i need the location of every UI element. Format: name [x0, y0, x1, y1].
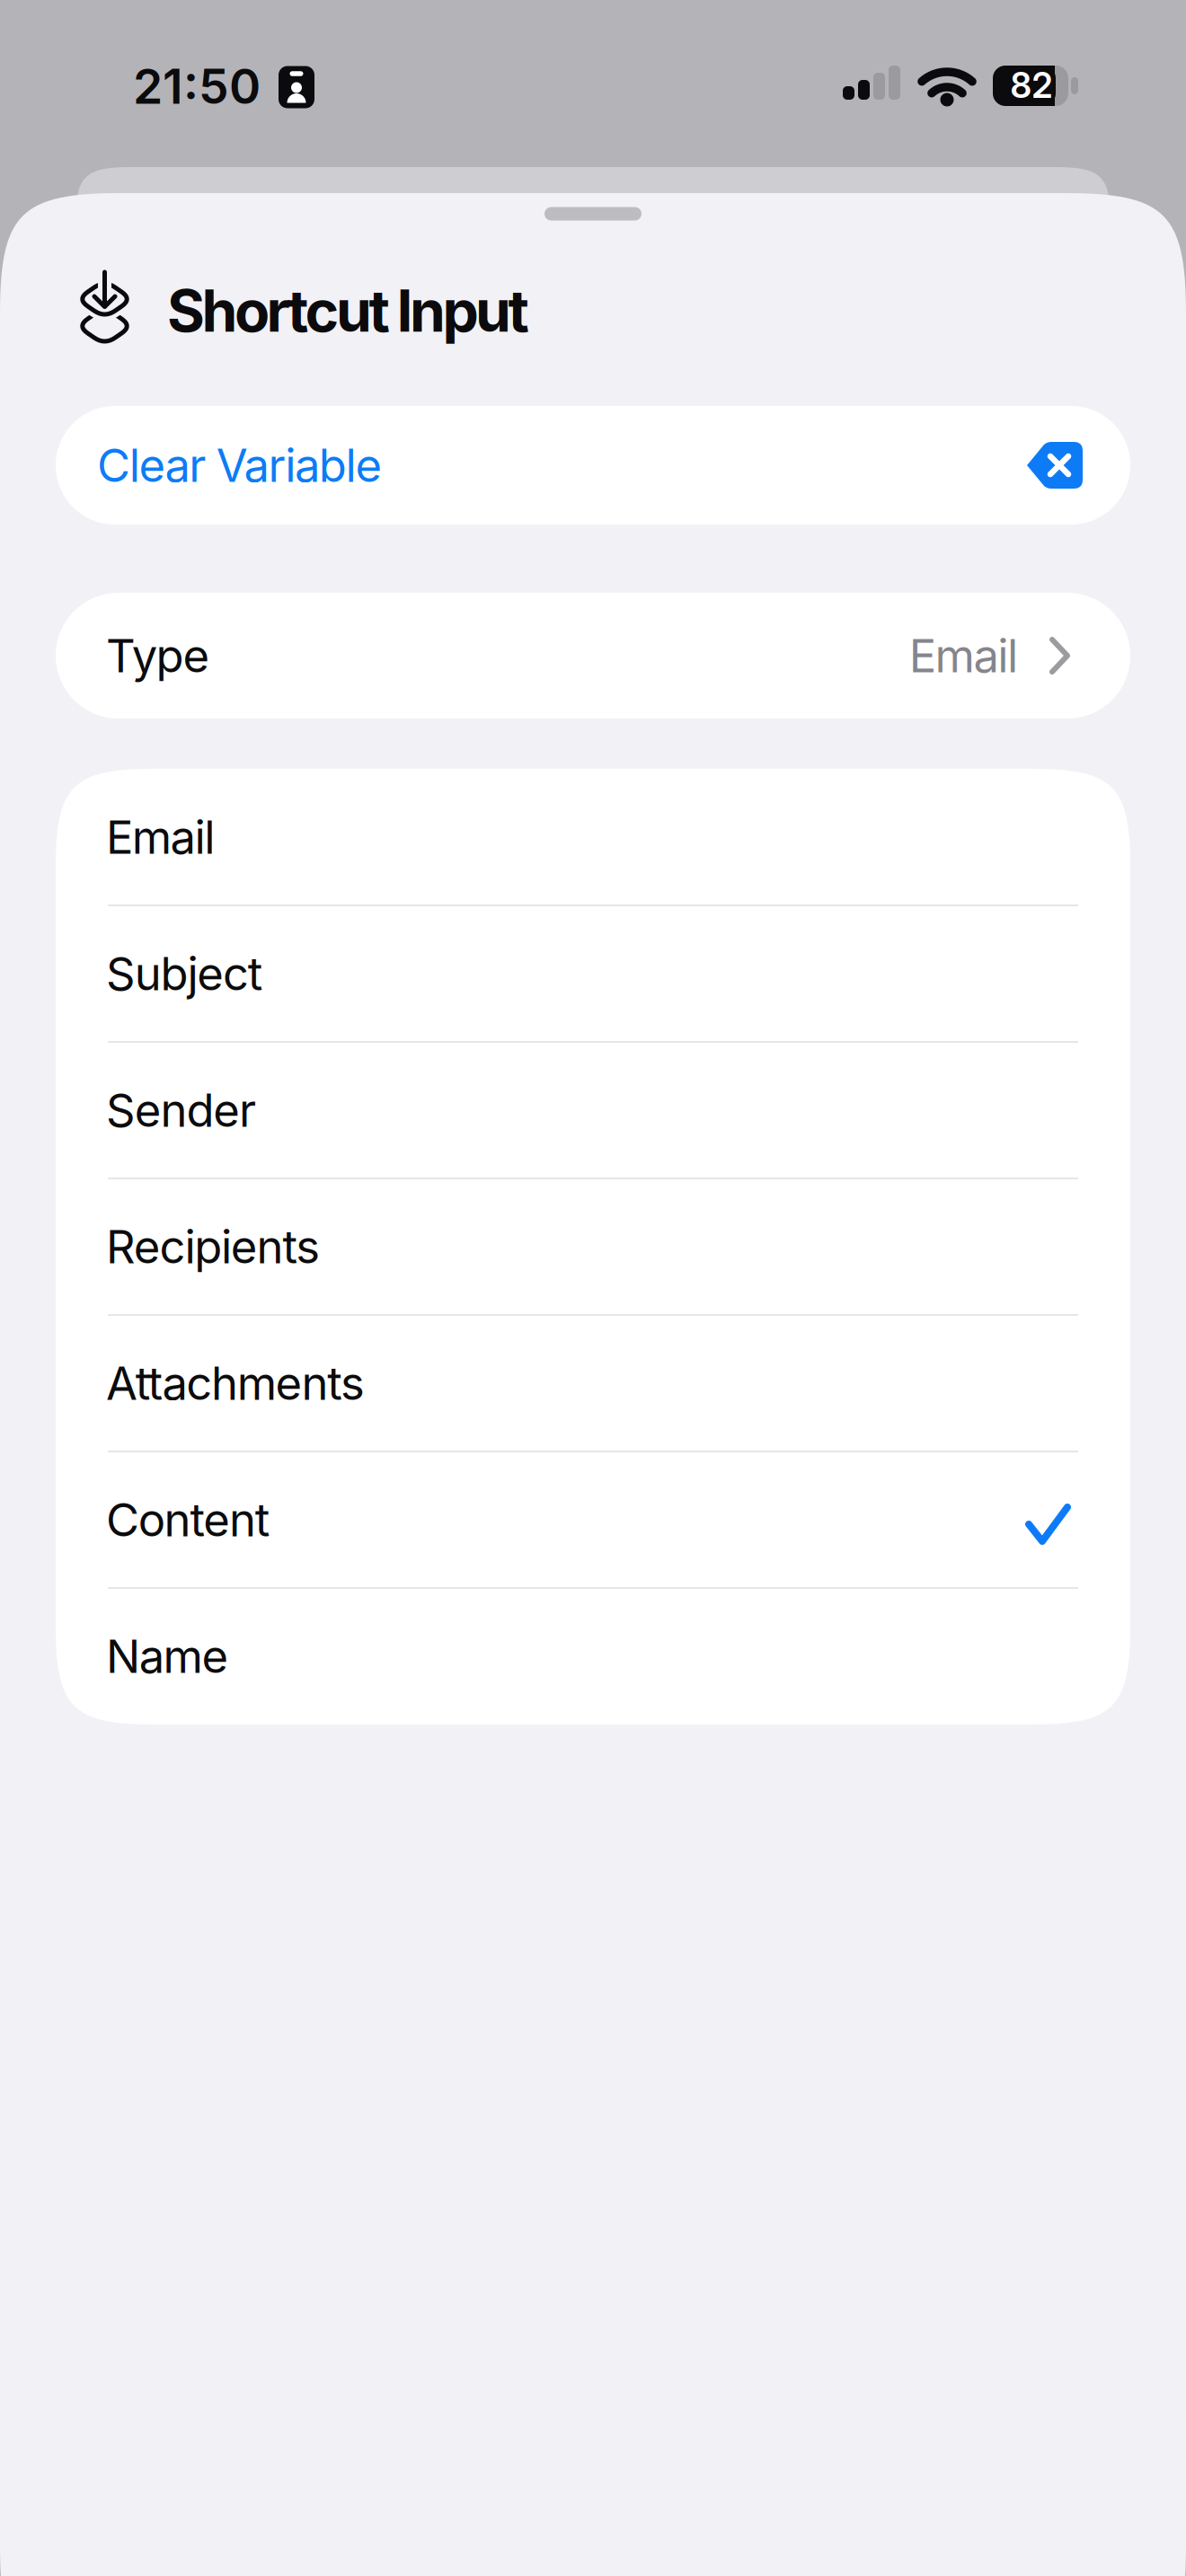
staticText: Shortcut Input [167, 277, 529, 345]
button[interactable]: Subject [56, 905, 1130, 1042]
staticText: Recipients [106, 1220, 320, 1274]
staticText: Sender [106, 1083, 256, 1137]
button[interactable]: Type [56, 593, 1130, 719]
button[interactable]: Attachments [56, 1315, 1130, 1451]
staticText: Content [106, 1493, 270, 1547]
button[interactable]: Content [56, 1451, 1130, 1588]
staticText: Clear Variable [97, 438, 382, 492]
staticText: 82 [1010, 65, 1053, 106]
staticText: Type [106, 629, 210, 683]
button[interactable]: Sender [56, 1042, 1130, 1178]
staticText: Name [106, 1629, 229, 1683]
staticText: 21:50 [133, 58, 261, 114]
staticText: Email [106, 810, 215, 864]
staticText: Subject [106, 947, 263, 1000]
button[interactable]: Clear Variable [56, 406, 1130, 525]
button[interactable]: Email [56, 769, 1130, 905]
button[interactable]: Name [56, 1588, 1130, 1725]
staticText: Attachments [106, 1356, 365, 1410]
staticText: Email [909, 629, 1018, 683]
button[interactable]: Recipients [56, 1178, 1130, 1315]
